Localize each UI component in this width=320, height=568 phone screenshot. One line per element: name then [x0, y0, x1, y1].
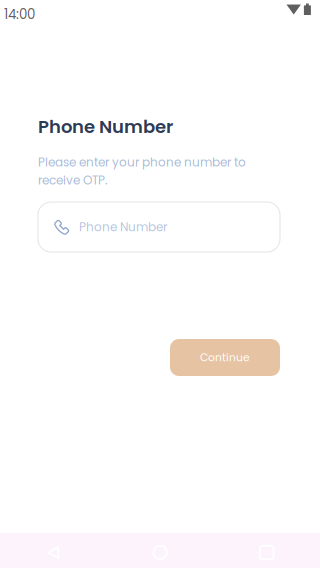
staticText: 14:00 — [4, 5, 35, 24]
button[interactable]: Continue — [170, 339, 280, 376]
staticText: Phone Number — [38, 114, 173, 139]
staticText: Continue — [200, 350, 250, 365]
staticText: receive OTP. — [38, 172, 108, 189]
staticText: Please enter your phone number to — [38, 154, 246, 171]
staticText: Phone Number — [79, 219, 167, 235]
